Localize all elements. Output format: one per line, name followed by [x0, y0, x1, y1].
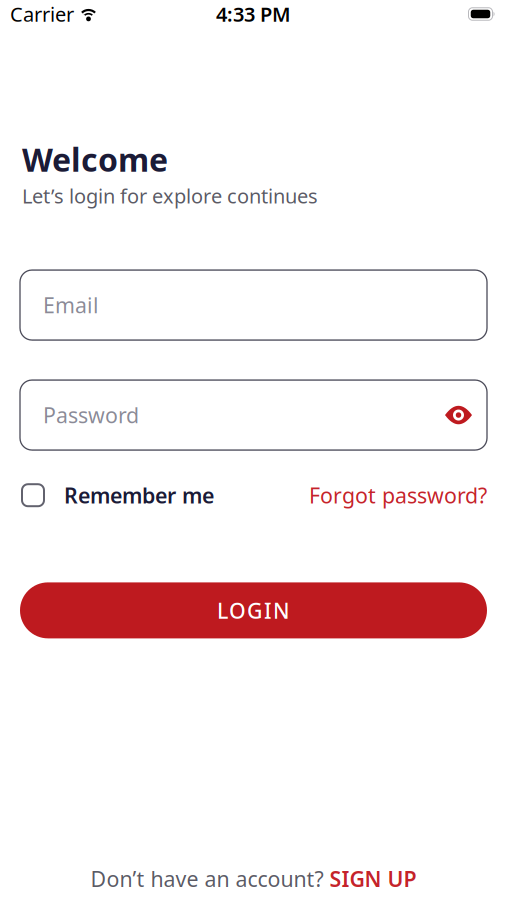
button[interactable]: Password	[20, 380, 487, 450]
staticText: Carrier	[10, 1, 74, 27]
button[interactable]: LOGIN	[20, 582, 487, 638]
staticText: Forgot password?	[309, 481, 487, 509]
staticText: LOGIN	[217, 596, 290, 624]
staticText: SIGN UP	[329, 865, 416, 893]
button[interactable]: Show password	[445, 405, 472, 425]
button[interactable]: Don’t have an account?	[90, 865, 416, 893]
staticText: Let’s login for explore continues	[22, 182, 318, 209]
button[interactable]: Email	[20, 270, 487, 340]
staticText: Welcome	[22, 138, 168, 180]
staticText: Password	[43, 401, 139, 429]
button[interactable]: Remember me	[22, 481, 214, 509]
button[interactable]: Forgot password?	[309, 481, 487, 509]
staticText: Remember me	[64, 481, 214, 509]
staticText: 4:33 PM	[216, 1, 291, 27]
staticText: Don’t have an account?	[90, 865, 323, 893]
staticText: Email	[43, 291, 99, 319]
